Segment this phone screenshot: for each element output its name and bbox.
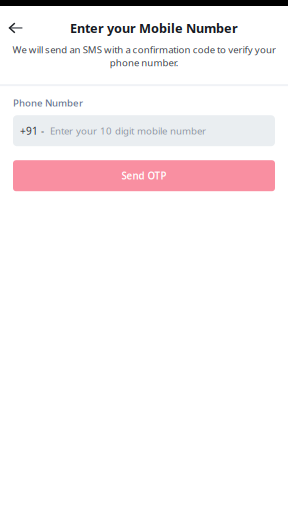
- staticText: +91: [20, 124, 38, 138]
- staticText: Send OTP: [121, 169, 166, 182]
- button[interactable]: Back: [0, 16, 32, 39]
- button[interactable]: Send OTP: [13, 160, 275, 191]
- staticText: Enter your Mobile Number: [70, 19, 238, 37]
- staticText: We will send an SMS with a confirmation …: [12, 43, 276, 69]
- staticText: -: [38, 124, 50, 137]
- staticText: Enter your 10 digit mobile number: [50, 124, 206, 137]
- staticText: Phone Number: [13, 96, 83, 109]
